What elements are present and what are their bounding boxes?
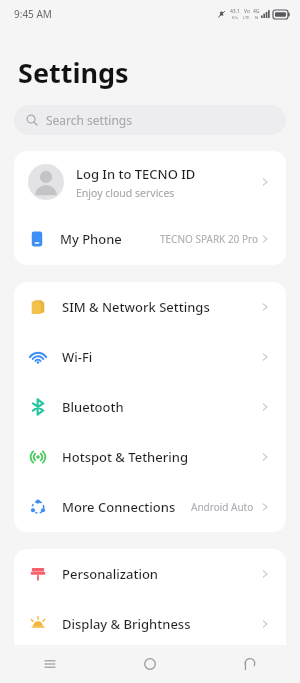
button[interactable]: Search settings (14, 105, 286, 135)
button[interactable]: More Connections (14, 482, 286, 532)
staticText: Personalization (62, 565, 158, 583)
button[interactable]: Log In to TECNO ID (14, 151, 286, 213)
staticText: Log In to TECNO ID (76, 165, 196, 183)
staticText: K/s (232, 15, 238, 20)
staticText: My Phone (60, 230, 122, 248)
staticText: 43.1 (230, 8, 240, 15)
staticText: Hotspot & Tethering (62, 448, 188, 466)
button[interactable]: Hotspot & Tethering (14, 432, 286, 482)
button[interactable]: Display & Brightness (14, 599, 286, 649)
staticText: More Connections (62, 498, 176, 516)
staticText: 9:45 AM (14, 7, 52, 21)
staticText: TECNO SPARK 20 Pro (160, 232, 258, 246)
button[interactable]: My Phone (14, 213, 286, 265)
staticText: 4G (253, 8, 260, 15)
staticText: Settings (18, 54, 129, 91)
staticText: Bluetooth (62, 398, 124, 416)
staticText: Vo (244, 8, 250, 15)
button[interactable]: Wi-Fi (14, 332, 286, 382)
button[interactable]: SIM & Network Settings (14, 282, 286, 332)
staticText: Enjoy cloud services (76, 186, 175, 200)
button[interactable]: Back (200, 645, 300, 683)
staticText: Display & Brightness (62, 615, 191, 633)
staticText: Search settings (46, 112, 132, 128)
staticText: Wi-Fi (62, 348, 93, 366)
staticText: Android Auto (191, 500, 254, 514)
button[interactable]: Personalization (14, 549, 286, 599)
staticText: LTE (243, 15, 250, 20)
button[interactable]: Sound & Vibration (14, 649, 286, 683)
button[interactable]: Recents (0, 645, 100, 683)
button[interactable]: Home (100, 645, 200, 683)
staticText: Sound & Vibration (62, 657, 175, 675)
staticText: SIM & Network Settings (62, 298, 210, 316)
staticText: N (255, 15, 259, 20)
button[interactable]: Bluetooth (14, 382, 286, 432)
